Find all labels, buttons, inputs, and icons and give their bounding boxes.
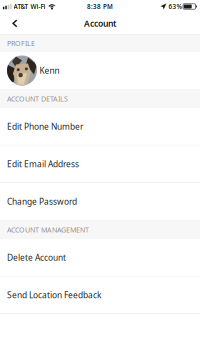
staticText: Send Location Feedback	[7, 289, 101, 301]
button[interactable]: Kenn	[0, 52, 200, 89]
staticText: 8:38 PM	[87, 2, 113, 11]
button[interactable]: Edit Email Address	[0, 145, 200, 183]
staticText: ACCOUNT MANAGEMENT	[7, 225, 89, 234]
button[interactable]: Delete Account	[0, 239, 200, 276]
staticText: Change Password	[7, 196, 77, 207]
staticText: 63%	[168, 2, 181, 11]
staticText: AT&T Wi-Fi	[13, 2, 45, 11]
button[interactable]: Send Location Feedback	[0, 276, 200, 314]
button[interactable]: Edit Phone Number	[0, 108, 200, 145]
staticText: ACCOUNT DETAILS	[7, 94, 68, 103]
staticText: Edit Phone Number	[7, 121, 83, 132]
staticText: PROFILE	[7, 38, 35, 48]
staticText: Edit Email Address	[7, 158, 79, 170]
staticText: Delete Account	[7, 252, 66, 263]
button[interactable]: Back	[4, 13, 26, 33]
staticText: Account	[84, 18, 116, 29]
button[interactable]: Change Password	[0, 183, 200, 220]
staticText: Kenn	[39, 65, 59, 76]
